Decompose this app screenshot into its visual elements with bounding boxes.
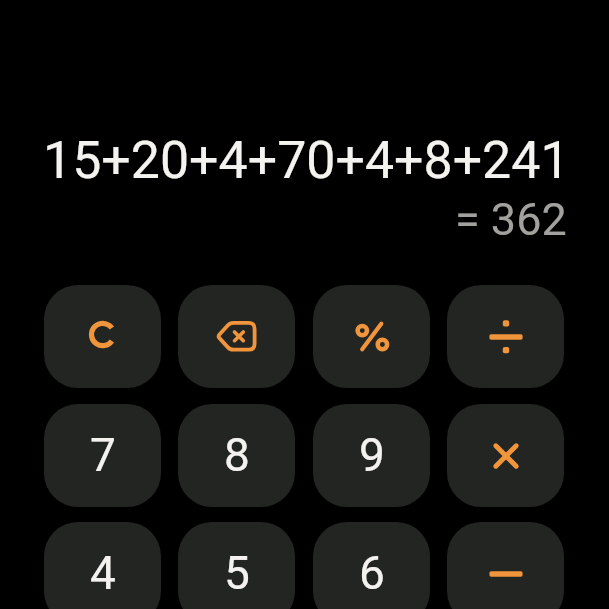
button[interactable]: 8 — [178, 404, 295, 507]
button[interactable]: 5 — [178, 522, 295, 609]
staticText: 9 — [359, 428, 385, 482]
button[interactable] — [447, 404, 564, 507]
staticText: 15+20+4+70+4+8+241 — [43, 130, 570, 191]
staticText: = 362 — [455, 193, 567, 246]
button[interactable] — [447, 522, 564, 609]
button[interactable] — [44, 285, 161, 388]
button[interactable]: 9 — [313, 404, 430, 507]
staticText: 4 — [90, 546, 116, 600]
staticText: 5 — [224, 546, 250, 600]
staticText: 8 — [224, 428, 250, 482]
button[interactable]: 4 — [44, 522, 161, 609]
button[interactable]: 6 — [313, 522, 430, 609]
staticText: 7 — [90, 428, 116, 482]
button[interactable] — [313, 285, 430, 388]
button[interactable] — [447, 285, 564, 388]
staticText: 6 — [359, 546, 385, 600]
button[interactable]: 7 — [44, 404, 161, 507]
button[interactable] — [178, 285, 295, 388]
